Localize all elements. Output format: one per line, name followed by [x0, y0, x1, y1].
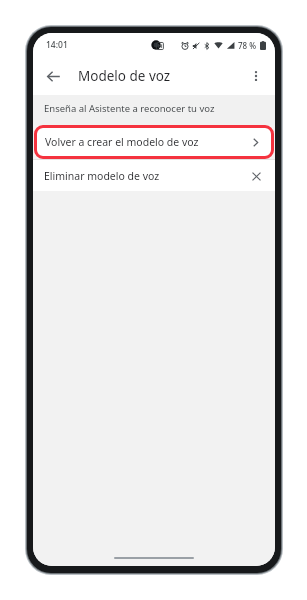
- button[interactable]: Atrás: [40, 63, 66, 89]
- staticText: 78 %: [238, 40, 257, 51]
- button[interactable]: Más opciones: [243, 63, 269, 89]
- button[interactable]: Volver a crear el modelo de voz: [37, 128, 271, 156]
- button[interactable]: Eliminar modelo de voz: [33, 160, 275, 191]
- staticText: Enseña al Asistente a reconocer tu voz: [44, 102, 215, 115]
- staticText: Volver a crear el modelo de voz: [45, 135, 248, 149]
- staticText: 14:01: [46, 39, 68, 51]
- other: Eliminar: [248, 168, 264, 184]
- staticText: Eliminar modelo de voz: [44, 169, 248, 183]
- staticText: Modelo de voz: [78, 67, 243, 85]
